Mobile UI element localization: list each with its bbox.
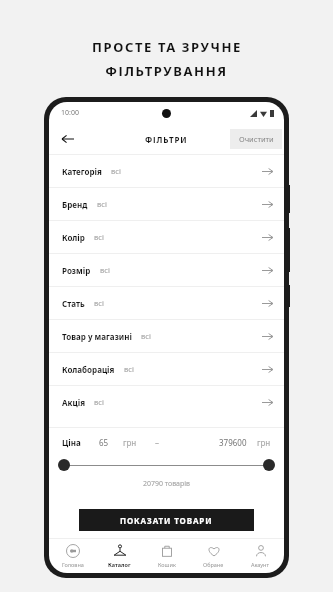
staticText: всі	[94, 397, 104, 407]
button[interactable]: ПОКАЗАТИ ТОВАРИ	[79, 509, 254, 531]
staticText: Обране	[203, 561, 224, 568]
staticText: Ціна	[62, 437, 81, 448]
staticText: Акція	[62, 397, 85, 408]
staticText: грн	[257, 437, 271, 448]
staticText: Колір	[62, 232, 85, 243]
button[interactable]: Очистити	[230, 129, 282, 149]
staticText: грн	[123, 437, 137, 448]
button[interactable]: Обране	[190, 539, 237, 573]
staticText: Бренд	[62, 199, 88, 210]
staticText: Кошик	[158, 561, 176, 568]
button[interactable]: Акаунт	[237, 539, 284, 573]
button[interactable]: Стать	[49, 287, 284, 319]
button[interactable]: Back	[55, 126, 81, 152]
staticText: 379600	[219, 437, 247, 448]
button[interactable]: Категорія	[49, 155, 284, 187]
staticText: 10:00	[61, 108, 79, 118]
staticText: ФІЛЬТРУВАННЯ	[105, 62, 228, 80]
staticText: всі	[97, 199, 107, 209]
staticText: 20790 товарів	[49, 479, 284, 489]
staticText: всі	[141, 331, 151, 341]
button[interactable]: Каталог	[96, 539, 143, 573]
button[interactable]: Товар у магазині	[49, 320, 284, 352]
staticText: Колаборація	[62, 364, 115, 375]
staticText: всі	[94, 298, 104, 308]
staticText: Каталог	[108, 561, 131, 568]
staticText: –	[155, 437, 159, 448]
staticText: всі	[124, 364, 134, 374]
staticText: Акаунт	[251, 561, 270, 568]
button[interactable]: Колаборація	[49, 353, 284, 385]
staticText: 65	[99, 437, 109, 448]
button[interactable]: Акція	[49, 386, 284, 418]
staticText: Очистити	[239, 134, 274, 144]
staticText: Розмір	[62, 265, 91, 276]
staticText: Товар у магазині	[62, 331, 132, 342]
staticText: Стать	[62, 298, 85, 309]
button[interactable]: Бренд	[49, 188, 284, 220]
button[interactable]: Головна	[49, 539, 96, 573]
staticText: всі	[94, 232, 104, 242]
button[interactable]: Розмір	[49, 254, 284, 286]
staticText: всі	[111, 166, 121, 176]
button[interactable]: Колір	[49, 221, 284, 253]
button[interactable]: Кошик	[143, 539, 190, 573]
staticText: ПРОСТЕ ТА ЗРУЧНЕ	[92, 38, 242, 56]
staticText: Головна	[62, 561, 84, 568]
staticText: ФІЛЬТРИ	[145, 134, 188, 145]
staticText: всі	[100, 265, 110, 275]
staticText: Категорія	[62, 166, 102, 177]
staticText: ПОКАЗАТИ ТОВАРИ	[120, 515, 213, 526]
